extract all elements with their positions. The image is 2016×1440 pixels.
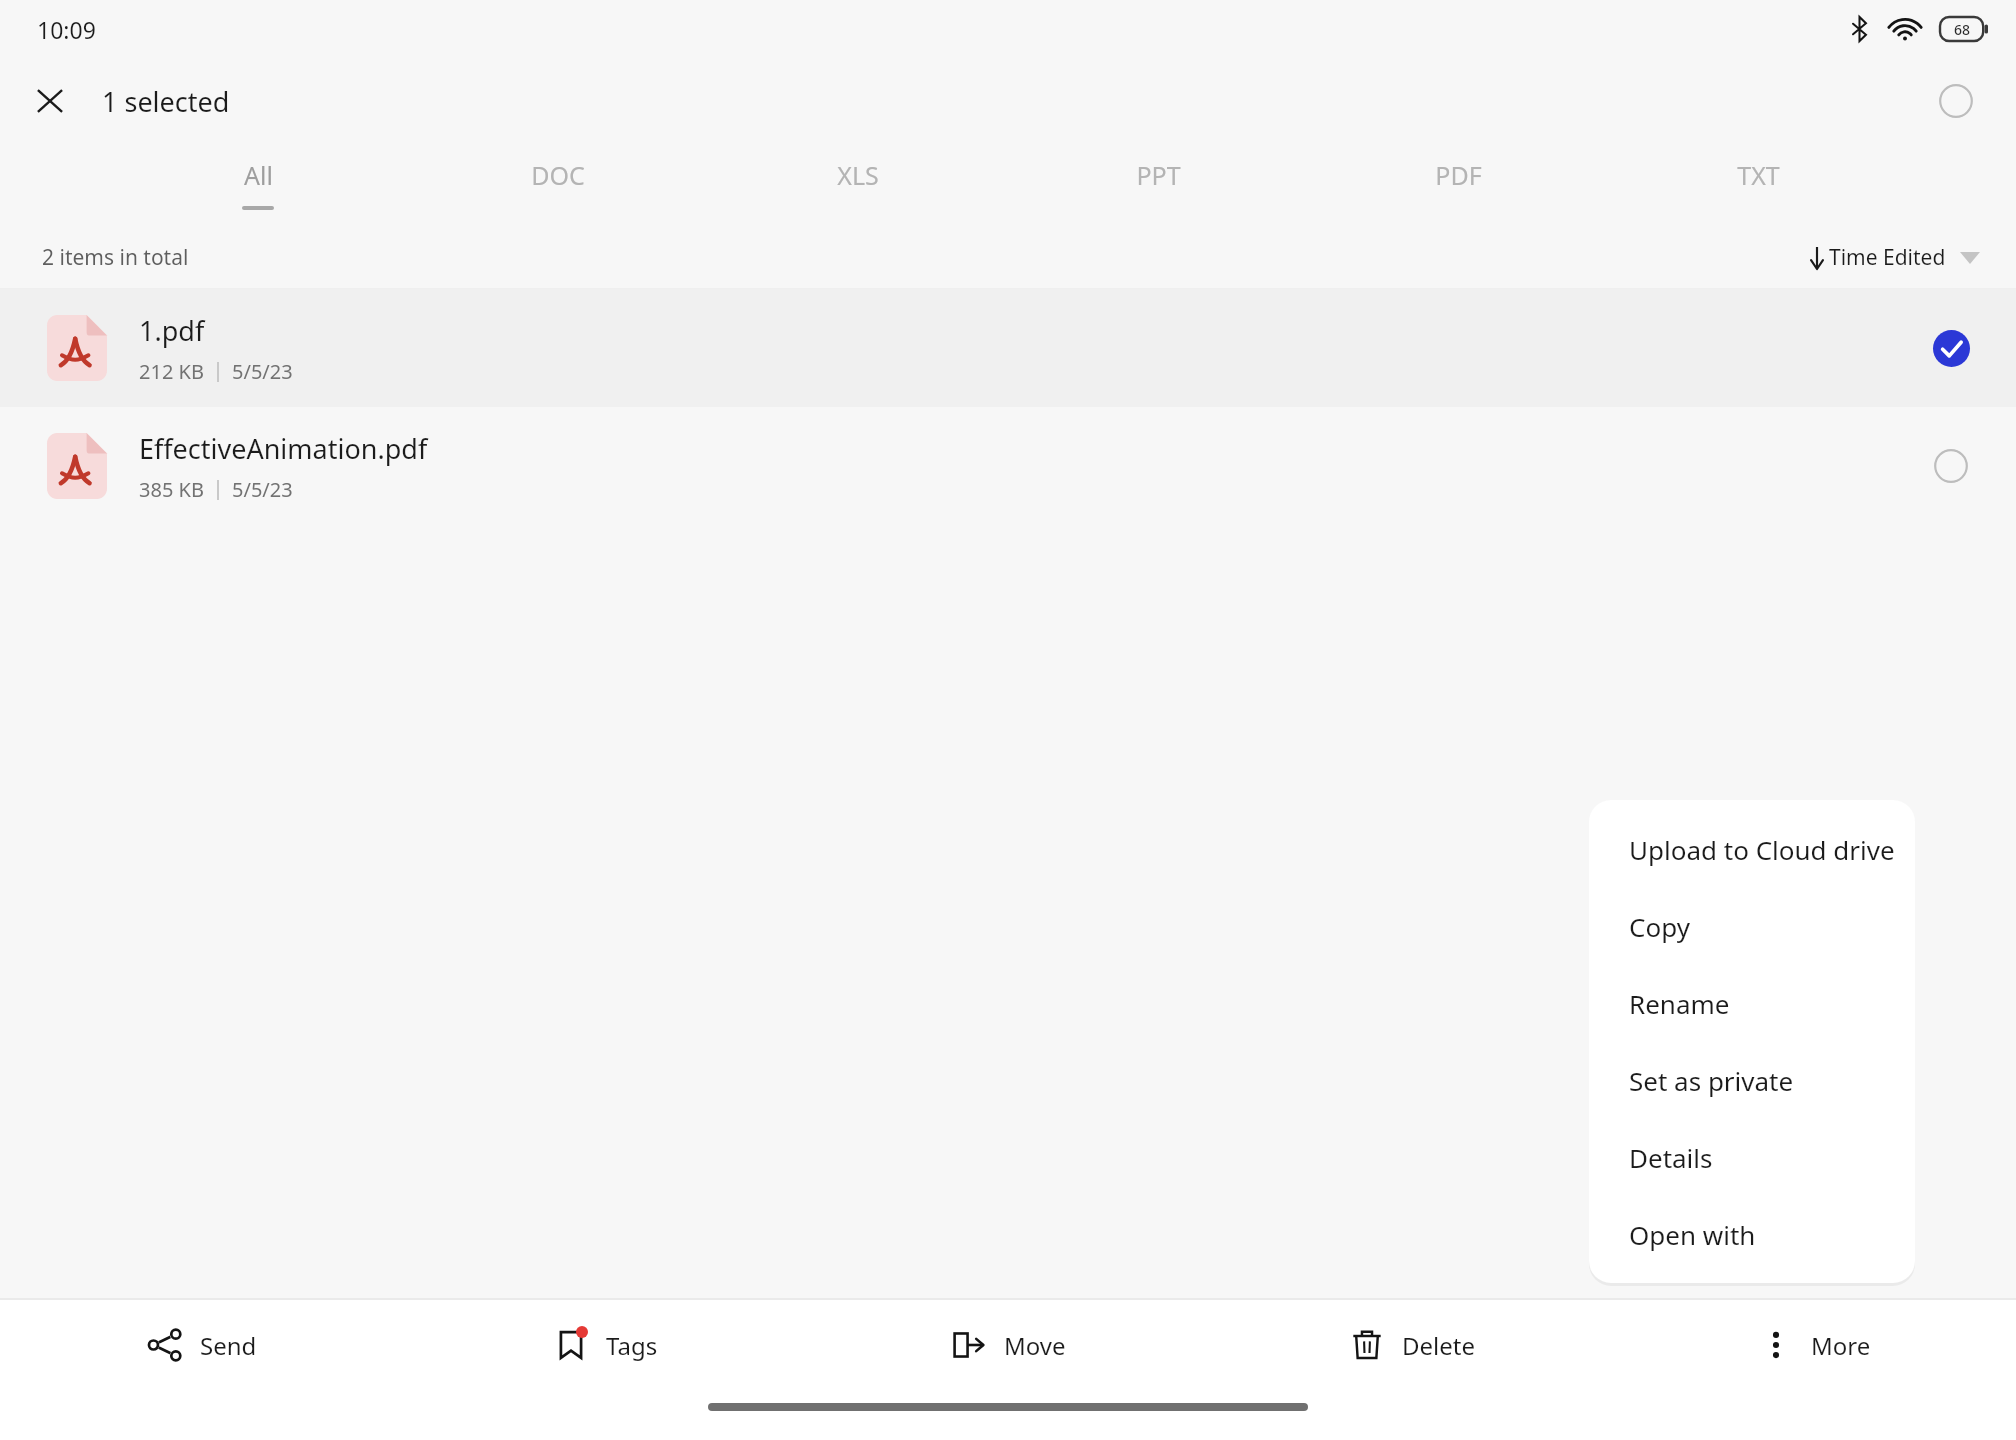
staticText: 1.pdf [139, 312, 205, 349]
staticText: PDF [1435, 158, 1482, 192]
button[interactable]: Upload to Cloud drive [1589, 810, 1915, 888]
staticText: Tags [606, 1329, 658, 1362]
button[interactable]: Rename [1589, 965, 1915, 1042]
button[interactable]: PDF [1308, 144, 1608, 226]
button[interactable]: Close selection [20, 71, 80, 131]
button[interactable]: Open with [1589, 1196, 1915, 1273]
staticText: PPT [1136, 158, 1181, 192]
button[interactable]: More [1613, 1300, 2016, 1390]
button[interactable]: PPT [1008, 144, 1308, 226]
staticText: 68 [1954, 20, 1971, 39]
staticText: Open with [1629, 1217, 1756, 1252]
button[interactable]: Copy [1589, 888, 1915, 965]
button[interactable]: DOC [408, 144, 708, 226]
staticText: Time Edited [1829, 243, 1946, 272]
button[interactable]: Send [0, 1300, 404, 1390]
staticText: 5/5/23 [232, 476, 293, 503]
staticText: TXT [1737, 158, 1780, 192]
staticText: 2 items in total [42, 243, 189, 272]
staticText: All [244, 158, 273, 192]
staticText: 1 selected [102, 83, 230, 120]
button[interactable]: Details [1589, 1119, 1915, 1196]
staticText: Move [1004, 1329, 1066, 1362]
button[interactable]: Move [807, 1300, 1210, 1390]
button[interactable]: All [108, 144, 408, 226]
staticText: XLS [837, 158, 879, 192]
staticText: 5/5/23 [232, 358, 293, 385]
staticText: 212 KB [139, 358, 204, 385]
button[interactable]: 1.pdf [0, 289, 2016, 407]
button[interactable]: Tags [404, 1300, 807, 1390]
button[interactable]: TXT [1608, 144, 1908, 226]
staticText: 10:09 [37, 14, 96, 45]
staticText: Rename [1629, 986, 1730, 1021]
button[interactable]: EffectiveAnimation.pdf [0, 407, 2016, 525]
staticText: Set as private [1629, 1063, 1794, 1098]
button[interactable]: Set as private [1589, 1042, 1915, 1119]
staticText: Delete [1402, 1329, 1475, 1362]
button[interactable]: XLS [708, 144, 1008, 226]
button[interactable]: Select EffectiveAnimation.pdf [1908, 423, 1994, 509]
staticText: Send [200, 1329, 257, 1362]
button[interactable]: Deselect 1.pdf [1908, 305, 1994, 391]
staticText: 385 KB [139, 476, 204, 503]
button[interactable]: Delete [1210, 1300, 1613, 1390]
staticText: DOC [531, 158, 585, 192]
staticText: Copy [1629, 909, 1690, 944]
staticText: Upload to Cloud drive [1629, 832, 1895, 867]
button[interactable]: Select all [1926, 71, 1986, 131]
staticText: EffectiveAnimation.pdf [139, 430, 428, 467]
staticText: More [1811, 1329, 1871, 1362]
staticText: Details [1629, 1140, 1713, 1175]
button[interactable]: Time Edited [1808, 243, 1980, 272]
